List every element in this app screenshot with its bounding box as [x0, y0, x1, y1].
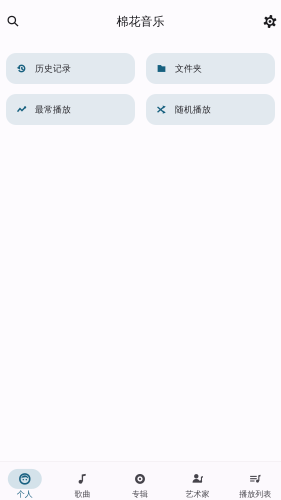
staticText: 最常播放 [35, 104, 71, 115]
button[interactable]: 个人 [0, 462, 54, 500]
button[interactable]: 随机播放 [146, 94, 275, 125]
button[interactable]: 历史记录 [6, 53, 135, 84]
button[interactable]: 最常播放 [6, 94, 135, 125]
button[interactable]: 搜索 [0, 8, 26, 34]
staticText: 专辑 [132, 489, 148, 499]
staticText: 播放列表 [239, 489, 271, 499]
button[interactable]: 专辑 [111, 462, 169, 500]
staticText: 历史记录 [35, 63, 71, 74]
button[interactable]: 艺术家 [169, 462, 226, 500]
staticText: 歌曲 [74, 489, 90, 499]
staticText: 艺术家 [186, 489, 210, 499]
button[interactable]: 歌曲 [54, 462, 111, 500]
staticText: 个人 [17, 489, 33, 499]
staticText: 棉花音乐 [116, 14, 164, 29]
button[interactable]: 设置 [257, 8, 281, 34]
staticText: 文件夹 [175, 63, 202, 74]
button[interactable]: 文件夹 [146, 53, 275, 84]
button[interactable]: 播放列表 [226, 462, 281, 500]
staticText: 随机播放 [175, 104, 211, 115]
